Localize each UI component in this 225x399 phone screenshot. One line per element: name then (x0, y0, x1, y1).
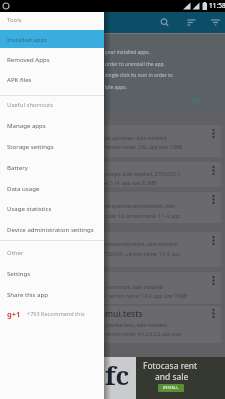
button[interactable] (0, 50, 104, 69)
button[interactable] (0, 30, 104, 48)
button[interactable] (0, 198, 104, 217)
staticText: Other (7, 249, 24, 257)
button[interactable] (0, 136, 104, 155)
staticText: INSTALL (163, 385, 179, 390)
button[interactable] (0, 357, 225, 399)
staticText: Tools (7, 16, 22, 24)
button[interactable] (4, 306, 221, 343)
button[interactable] (207, 192, 220, 207)
staticText: de eyesfree.setorientation, date (105, 203, 175, 209)
staticText: heroesofskyrealm, date installed: (105, 241, 178, 247)
staticText: ea.uptodown, date installed: (105, 135, 168, 141)
button[interactable] (0, 116, 104, 135)
button[interactable] (207, 233, 220, 248)
button[interactable] (4, 192, 221, 223)
staticText: APK files (7, 75, 32, 83)
button[interactable] (207, 163, 220, 178)
button[interactable] (0, 219, 104, 238)
button[interactable] (4, 272, 221, 304)
staticText: Manage apps (7, 121, 46, 129)
staticText: iple apps. (105, 84, 127, 91)
staticText: Installed apps (7, 35, 48, 43)
staticText: Share this app (7, 290, 48, 298)
staticText: 7022491, version name: 1.0.4, app (105, 251, 181, 257)
staticText: Device administration settings (7, 225, 94, 233)
staticText: version name: 2.82, app size: 10MB (105, 144, 183, 150)
staticText: Battery (7, 163, 28, 171)
button[interactable] (0, 284, 104, 303)
button[interactable] (4, 162, 221, 187)
staticText: Settings (7, 269, 31, 277)
staticText: code: 10, version name: 1.1.4, app (105, 213, 180, 219)
staticText: anager, date installed: 27/02/2017, (105, 171, 181, 177)
button[interactable] (157, 15, 172, 30)
staticText: your installed apps. (105, 49, 150, 56)
button[interactable] (0, 70, 104, 89)
staticText: +793 Recommend this (27, 310, 85, 317)
staticText: Storage settings (7, 142, 54, 150)
button[interactable] (207, 273, 220, 288)
button[interactable] (0, 264, 104, 283)
staticText: order to uninstall the app. (105, 61, 165, 68)
staticText: 11:58 (209, 1, 225, 10)
staticText: Removed Apps (7, 55, 50, 63)
staticText: version name: 4.4.2-0.0.2, app size: (105, 331, 182, 337)
button[interactable] (207, 306, 220, 321)
staticText: and sale (155, 371, 189, 383)
button[interactable] (0, 157, 104, 176)
staticText: Useful shortcuts (7, 101, 54, 109)
staticText: l, version name: 1.4.2, app size: 16MB (105, 293, 188, 299)
button[interactable] (0, 305, 104, 324)
staticText: Fotocasa rent (143, 360, 198, 372)
staticText: e: 3.14, app size: 8.3MB (105, 180, 157, 186)
button[interactable]: INSTALL (158, 384, 184, 392)
staticText: g+1 (7, 309, 21, 319)
staticText: fc (105, 357, 130, 392)
staticText: single click its icon in order to (105, 72, 173, 79)
button[interactable] (208, 15, 223, 30)
button[interactable]: OK (191, 96, 201, 105)
staticText: Usage statistics (7, 204, 52, 212)
button[interactable] (4, 125, 221, 157)
staticText: ystemui.tests, date installed: (105, 322, 168, 328)
button[interactable] (0, 178, 104, 197)
staticText: n terrarium, date installed: (105, 284, 164, 290)
button[interactable] (207, 126, 220, 141)
button[interactable] (4, 232, 221, 267)
staticText: mui.tests (105, 308, 143, 320)
button[interactable] (184, 15, 199, 30)
staticText: Data usage (7, 184, 40, 192)
